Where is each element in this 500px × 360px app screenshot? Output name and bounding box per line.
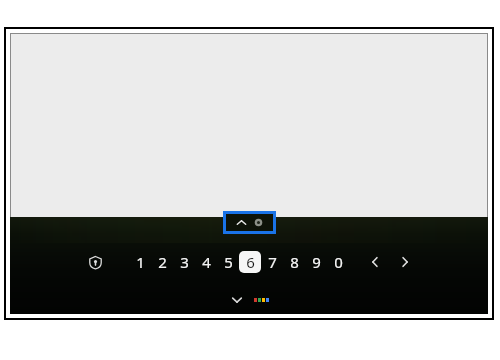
- button[interactable]: 2: [151, 251, 173, 273]
- button[interactable]: 9: [305, 251, 327, 273]
- staticText: 0: [334, 252, 343, 272]
- button[interactable]: 1: [129, 251, 151, 273]
- staticText: 6: [246, 252, 255, 272]
- staticText: 7: [268, 252, 277, 272]
- button[interactable]: Previous: [365, 252, 385, 272]
- staticText: 4: [202, 252, 211, 272]
- button[interactable]: Parental lock: [83, 250, 107, 274]
- button[interactable]: 3: [173, 251, 195, 273]
- button[interactable]: 0: [327, 251, 349, 273]
- staticText: 3: [180, 252, 189, 272]
- button[interactable]: 4: [195, 251, 217, 273]
- button[interactable]: Colour buttons: [254, 298, 269, 302]
- staticText: 1: [136, 252, 145, 272]
- button[interactable]: 8: [283, 251, 305, 273]
- staticText: 8: [290, 252, 299, 272]
- button[interactable]: Collapse channel bar: [223, 211, 276, 234]
- staticText: 2: [158, 252, 167, 272]
- staticText: 9: [312, 252, 321, 272]
- button[interactable]: 5: [217, 251, 239, 273]
- button[interactable]: 6: [239, 251, 261, 273]
- button[interactable]: 7: [261, 251, 283, 273]
- button[interactable]: More: [229, 292, 245, 308]
- staticText: 5: [224, 252, 233, 272]
- button[interactable]: Next: [395, 252, 415, 272]
